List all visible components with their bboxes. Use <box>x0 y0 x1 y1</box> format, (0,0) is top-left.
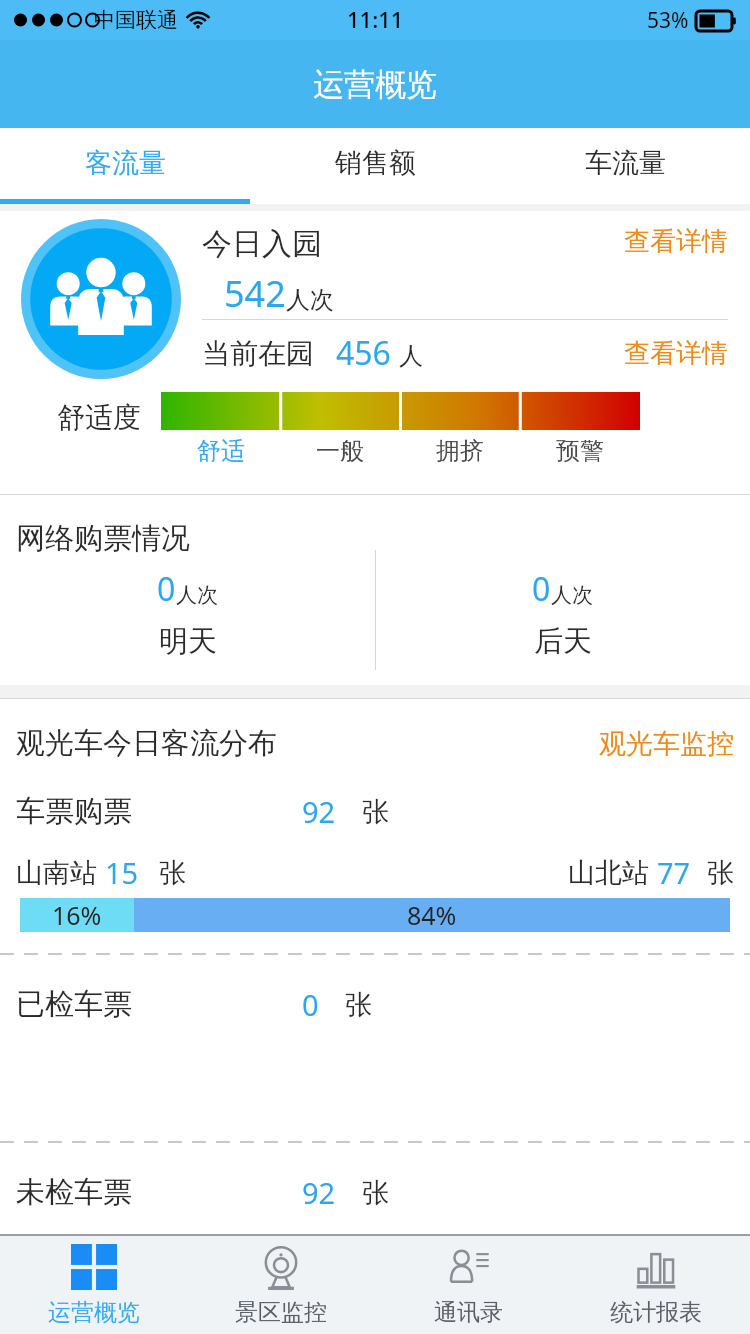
button[interactable]: 销售额 <box>250 128 500 204</box>
staticText: 0 <box>532 567 551 611</box>
staticText: 预警 <box>556 436 604 466</box>
staticText: 舒适 <box>197 436 245 466</box>
staticText: 人次 <box>551 582 593 608</box>
staticText: 张 <box>707 856 734 890</box>
staticText: 11:11 <box>347 4 404 34</box>
staticText: 今日入园 <box>202 225 322 263</box>
staticText: 77 <box>657 853 691 892</box>
button[interactable]: 运营概览 <box>0 1236 187 1334</box>
staticText: 山北站 <box>568 856 649 890</box>
staticText: 15 <box>105 853 139 892</box>
staticText: 未检车票 <box>16 1174 132 1211</box>
staticText: 张 <box>159 856 186 890</box>
staticText: 运营概览 <box>48 1298 140 1327</box>
staticText: 92 <box>302 1173 336 1212</box>
staticText: 当前在园 <box>202 336 314 371</box>
staticText: 张 <box>362 795 389 829</box>
other: 统计报表 <box>633 1244 679 1290</box>
staticText: 542 <box>224 269 286 318</box>
other: 景区监控 <box>258 1244 304 1290</box>
button[interactable]: 客流量 <box>0 128 250 204</box>
staticText: 车流量 <box>585 146 666 180</box>
staticText: 一般 <box>316 436 364 466</box>
button[interactable]: 通讯录 <box>374 1236 562 1334</box>
staticText: 统计报表 <box>610 1298 702 1327</box>
staticText: 84% <box>407 898 457 932</box>
staticText: 53% <box>647 6 689 35</box>
button[interactable]: 统计报表 <box>562 1236 750 1334</box>
staticText: 观光车今日客流分布 <box>16 725 277 762</box>
button[interactable]: 观光车监控 <box>599 727 734 761</box>
staticText: 拥挤 <box>436 436 484 466</box>
staticText: 0 <box>302 985 319 1024</box>
staticText: 客流量 <box>85 146 166 180</box>
staticText: 人 <box>399 341 423 371</box>
button[interactable]: 车流量 <box>500 128 750 204</box>
staticText: 张 <box>362 1176 389 1210</box>
staticText: 明天 <box>159 623 217 660</box>
staticText: 销售额 <box>335 146 416 180</box>
staticText: 网络购票情况 <box>16 520 190 557</box>
staticText: 山南站 <box>16 856 97 890</box>
staticText: 查看详情 <box>624 337 728 370</box>
other: 运营概览 <box>71 1244 117 1290</box>
staticText: 456 <box>336 331 391 375</box>
staticText: 车票购票 <box>16 793 132 830</box>
staticText: 人次 <box>176 582 218 608</box>
staticText: 92 <box>302 792 336 831</box>
staticText: 查看详情 <box>624 225 728 258</box>
staticText: 观光车监控 <box>599 727 734 761</box>
button[interactable]: 景区监控 <box>187 1236 374 1334</box>
staticText: 后天 <box>534 623 592 660</box>
staticText: 16% <box>52 898 102 932</box>
staticText: 通讯录 <box>434 1298 503 1327</box>
staticText: 舒适度 <box>57 400 141 435</box>
staticText: 0 <box>157 567 176 611</box>
staticText: 人次 <box>286 285 334 315</box>
staticText: 景区监控 <box>235 1298 327 1327</box>
staticText: 已检车票 <box>16 986 132 1023</box>
button[interactable]: 查看详情 <box>624 225 728 258</box>
staticText: 中国联通 <box>94 7 178 33</box>
other: 通讯录 <box>445 1244 491 1290</box>
button[interactable]: 查看详情 <box>624 337 728 370</box>
staticText: 运营概览 <box>313 65 437 104</box>
staticText: 张 <box>345 988 372 1022</box>
